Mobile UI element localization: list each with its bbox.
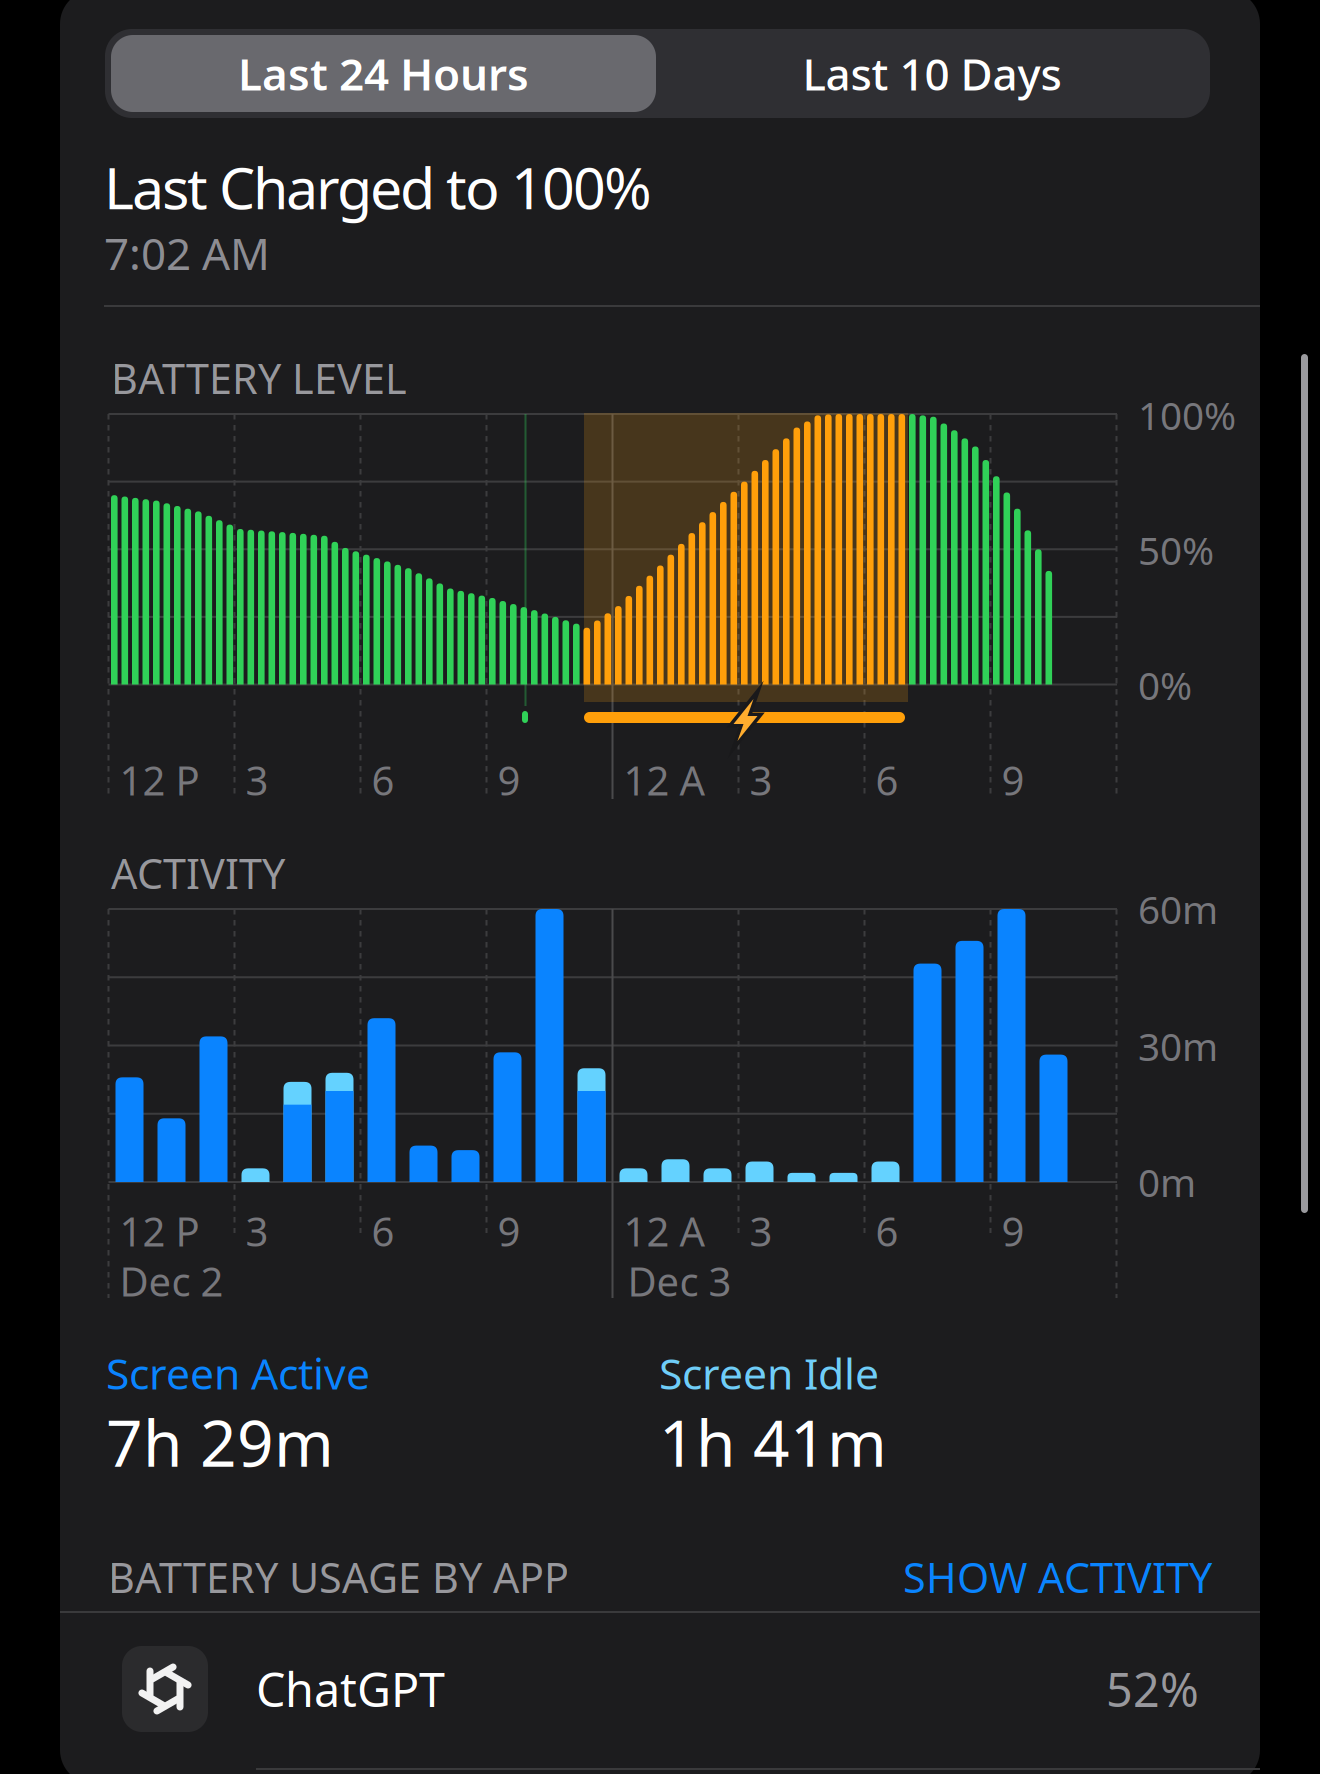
staticText: 3: [749, 1204, 772, 1257]
staticText: 12 A: [623, 1204, 705, 1257]
staticText: SHOW ACTIVITY: [903, 1550, 1212, 1604]
staticText: 0m: [1138, 1156, 1196, 1208]
staticText: ChatGPT: [256, 1658, 445, 1720]
staticText: Last 10 Days: [802, 44, 1061, 103]
button[interactable]: Last 10 Days: [658, 35, 1206, 112]
staticText: 6: [371, 753, 394, 806]
staticText: 1h 41m: [659, 1399, 887, 1484]
staticText: 52%: [1106, 1658, 1199, 1720]
button[interactable]: SHOW ACTIVITY: [792, 1545, 1212, 1609]
staticText: 7h 29m: [106, 1399, 334, 1484]
staticText: Last Charged to 100%: [104, 149, 652, 225]
staticText: 12 A: [623, 753, 705, 806]
staticText: ACTIVITY: [111, 846, 285, 900]
staticText: 12 P: [119, 1204, 199, 1257]
staticText: 60m: [1138, 883, 1218, 935]
staticText: 9: [1001, 1204, 1024, 1257]
staticText: Dec 3: [627, 1254, 731, 1307]
staticText: BATTERY LEVEL: [111, 351, 407, 405]
staticText: 3: [749, 753, 772, 806]
staticText: Dec 2: [119, 1254, 223, 1307]
staticText: 9: [497, 753, 520, 806]
staticText: 6: [371, 1204, 394, 1257]
button[interactable]: Last 24 Hours: [111, 35, 656, 112]
staticText: 9: [497, 1204, 520, 1257]
staticText: 100%: [1138, 389, 1236, 441]
staticText: 0%: [1138, 659, 1192, 711]
staticText: 9: [1001, 753, 1024, 806]
staticText: 30m: [1138, 1020, 1218, 1072]
staticText: 6: [875, 1204, 898, 1257]
staticText: 12 P: [119, 753, 199, 806]
button[interactable]: ChatGPT: [60, 1610, 1260, 1768]
staticText: 3: [245, 753, 268, 806]
staticText: Screen Active: [106, 1345, 370, 1401]
staticText: BATTERY USAGE BY APP: [108, 1550, 569, 1604]
staticText: 6: [875, 753, 898, 806]
staticText: 7:02 AM: [104, 224, 270, 282]
staticText: Last 24 Hours: [238, 44, 529, 103]
staticText: 50%: [1138, 524, 1214, 576]
staticText: 3: [245, 1204, 268, 1257]
staticText: Screen Idle: [659, 1345, 879, 1401]
